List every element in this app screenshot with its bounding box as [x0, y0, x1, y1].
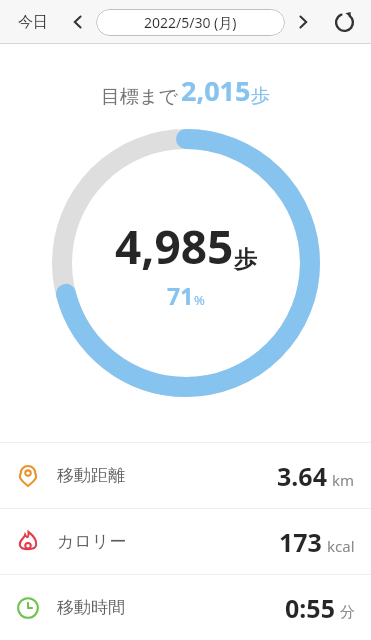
button[interactable]: カロリー — [0, 509, 371, 574]
staticText: 目標まで — [101, 85, 178, 109]
staticText: 移動時間 — [57, 597, 125, 618]
staticText: 3.64 — [277, 459, 327, 493]
staticText: km — [332, 470, 355, 490]
staticText: 4,985 — [115, 215, 234, 278]
button[interactable]: 前の日 — [64, 8, 92, 36]
staticText: % — [194, 291, 205, 309]
staticText: kcal — [327, 536, 355, 556]
button[interactable]: 次の日 — [289, 8, 317, 36]
button[interactable]: 今日 — [14, 9, 52, 36]
button[interactable]: 2022/5/30 (月) — [96, 9, 285, 36]
staticText: 歩 — [251, 84, 270, 108]
staticText: 173 — [279, 525, 322, 559]
staticText: 0:55 — [285, 591, 335, 625]
button[interactable]: 移動距離 — [0, 443, 371, 508]
button[interactable]: 移動時間 — [0, 575, 371, 640]
staticText: 移動距離 — [57, 465, 125, 486]
staticText: 2022/5/30 (月) — [144, 13, 237, 32]
staticText: カロリー — [57, 531, 127, 552]
staticText: 2,015 — [181, 72, 251, 109]
staticText: 歩 — [234, 245, 257, 274]
staticText: 分 — [340, 603, 355, 622]
button[interactable]: 更新 — [327, 5, 361, 39]
staticText: 71 — [167, 280, 194, 311]
staticText: 今日 — [18, 13, 48, 32]
